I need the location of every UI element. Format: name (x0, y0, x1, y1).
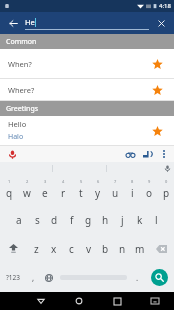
staticText: 7 (114, 179, 117, 184)
staticText: 4:18 (159, 2, 171, 10)
button[interactable]: Recents (98, 292, 136, 310)
button[interactable]: 4 (54, 176, 72, 205)
button[interactable]: 6 (89, 176, 106, 205)
staticText: s (35, 213, 40, 227)
button[interactable]: h (97, 205, 114, 234)
staticText: l (155, 213, 158, 227)
button[interactable]: 1 (1, 178, 17, 204)
button[interactable]: 8 (124, 178, 140, 204)
button[interactable]: Back (22, 292, 60, 310)
staticText: 3 (44, 179, 47, 184)
button[interactable]: 1 (0, 176, 18, 205)
button[interactable]: 2 (19, 178, 35, 204)
staticText: Common (6, 37, 37, 47)
button[interactable]: Listen (141, 148, 153, 160)
button[interactable]: 3 (37, 178, 53, 204)
button[interactable]: Home (60, 292, 98, 310)
button[interactable]: Shift (0, 234, 27, 263)
staticText: 8 (131, 179, 134, 184)
staticText: x (51, 242, 57, 256)
button[interactable]: 8 (123, 176, 140, 205)
staticText: Halo (8, 132, 24, 142)
staticText: i (131, 186, 134, 200)
staticText: 6 (97, 179, 100, 184)
button[interactable]: Voice input (160, 162, 174, 174)
button[interactable]: 2 (18, 176, 36, 205)
staticText: g (85, 213, 92, 227)
button[interactable]: Search (145, 263, 174, 292)
staticText: n (119, 242, 126, 256)
button[interactable]: 3 (36, 176, 54, 205)
staticText: u (112, 186, 119, 200)
staticText: 0 (165, 179, 168, 184)
staticText: ?123 (6, 273, 20, 282)
staticText: h (102, 213, 109, 227)
button[interactable]: Clear (153, 15, 169, 31)
button[interactable]: When? (0, 49, 174, 79)
staticText: 2 (26, 179, 29, 184)
staticText: k (137, 213, 143, 227)
button[interactable]: x (45, 234, 63, 263)
button[interactable]: 0 (158, 178, 174, 204)
button[interactable]: l (148, 205, 165, 234)
button[interactable]: s (28, 205, 46, 234)
button[interactable]: b (97, 234, 114, 263)
button[interactable]: Back (5, 15, 21, 31)
staticText: d (51, 213, 58, 227)
button[interactable]: a (10, 205, 28, 234)
button[interactable]: f (63, 205, 80, 234)
staticText: q (6, 186, 13, 200)
button[interactable]: z (27, 234, 45, 263)
button[interactable]: k (131, 205, 148, 234)
button[interactable]: c (63, 234, 80, 263)
button[interactable]: Delete (148, 234, 174, 263)
staticText: b (102, 242, 109, 256)
button[interactable]: v (80, 234, 97, 263)
staticText: 1 (8, 179, 11, 184)
button[interactable]: Space (57, 263, 130, 292)
staticText: 4 (62, 179, 65, 184)
button[interactable]: 0 (157, 176, 174, 205)
staticText: t (79, 186, 83, 200)
button[interactable]: d (46, 205, 63, 234)
button[interactable]: Where? (0, 79, 174, 101)
button[interactable]: More options (158, 148, 170, 160)
button[interactable]: 4 (55, 178, 71, 204)
button[interactable]: Speak (6, 148, 18, 160)
staticText: He (25, 17, 35, 27)
button[interactable]: 9 (140, 176, 157, 205)
button[interactable]: n (114, 234, 131, 263)
staticText: 5 (80, 179, 83, 184)
staticText: f (70, 213, 74, 227)
staticText: j (121, 213, 124, 227)
button[interactable]: 5 (72, 176, 89, 205)
button[interactable]: m (131, 234, 148, 263)
button[interactable]: g (80, 205, 97, 234)
button[interactable]: He (25, 17, 149, 30)
button[interactable]: Favorite (148, 122, 166, 140)
button[interactable]: 7 (106, 176, 123, 205)
button[interactable]: ?123 (0, 263, 26, 292)
staticText: When? (8, 59, 32, 69)
button[interactable]: Change language (41, 263, 57, 292)
button[interactable]: Translate (124, 148, 136, 160)
button[interactable]: , (26, 263, 41, 292)
button[interactable]: 6 (90, 178, 106, 204)
button[interactable]: 5 (73, 178, 89, 204)
staticText: r (61, 186, 66, 200)
button[interactable]: Favorite (148, 81, 166, 99)
staticText: , (32, 272, 35, 283)
button[interactable]: 7 (107, 178, 123, 204)
button[interactable]: . (130, 263, 145, 292)
button[interactable]: Hide keyboard (136, 292, 174, 310)
button[interactable]: 9 (141, 178, 157, 204)
staticText: c (69, 242, 74, 256)
button[interactable]: Favorite (148, 55, 166, 73)
staticText: e (42, 186, 48, 200)
button[interactable]: Hello (0, 116, 174, 146)
button[interactable]: j (114, 205, 131, 234)
staticText: o (146, 186, 153, 200)
